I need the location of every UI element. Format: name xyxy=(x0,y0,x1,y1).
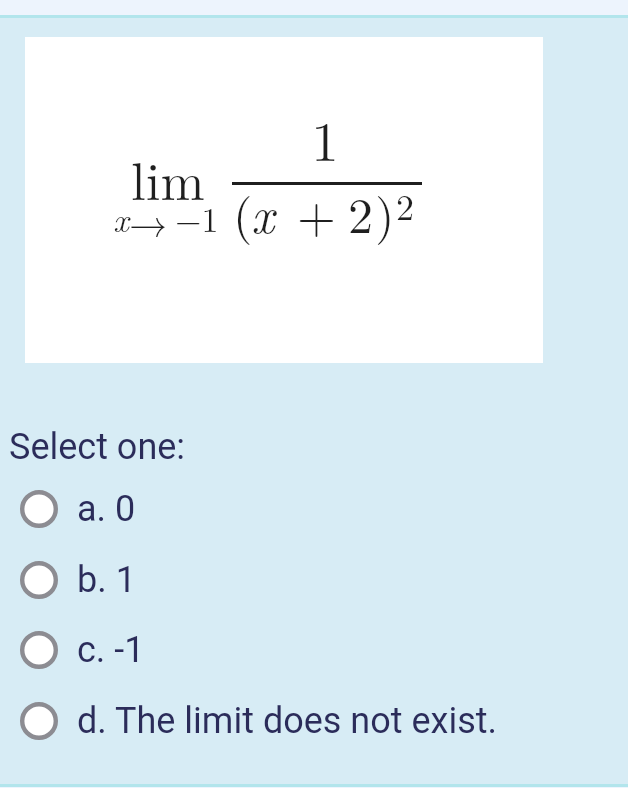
staticText: x xyxy=(113,194,129,242)
staticText: + xyxy=(297,177,336,248)
other: Select a. 0 xyxy=(20,490,58,528)
staticText: lim xyxy=(131,140,205,215)
staticText: ) xyxy=(375,177,395,248)
button[interactable]: Select c. -1 xyxy=(0,615,628,685)
staticText: ( xyxy=(233,177,253,248)
staticText: −1 xyxy=(175,194,219,242)
other: Select c. -1 xyxy=(20,631,58,669)
staticText: Select one: xyxy=(9,426,186,468)
button[interactable]: Select b. 1 xyxy=(0,545,628,615)
staticText: b. 1 xyxy=(77,559,136,601)
other: Select d. The limit does not exist. xyxy=(20,702,58,740)
staticText: a. 0 xyxy=(77,488,136,530)
staticText: x xyxy=(251,177,275,248)
button[interactable]: Select d. The limit does not exist. xyxy=(0,686,628,756)
staticText: 2 xyxy=(348,177,373,248)
button[interactable]: Select a. 0 xyxy=(0,474,628,544)
staticText: → xyxy=(129,194,168,248)
other: Select b. 1 xyxy=(20,561,58,599)
staticText: d. The limit does not exist. xyxy=(77,700,497,742)
staticText: 1 xyxy=(230,99,420,177)
staticText: c. -1 xyxy=(77,629,145,671)
staticText: 2 xyxy=(396,179,414,230)
